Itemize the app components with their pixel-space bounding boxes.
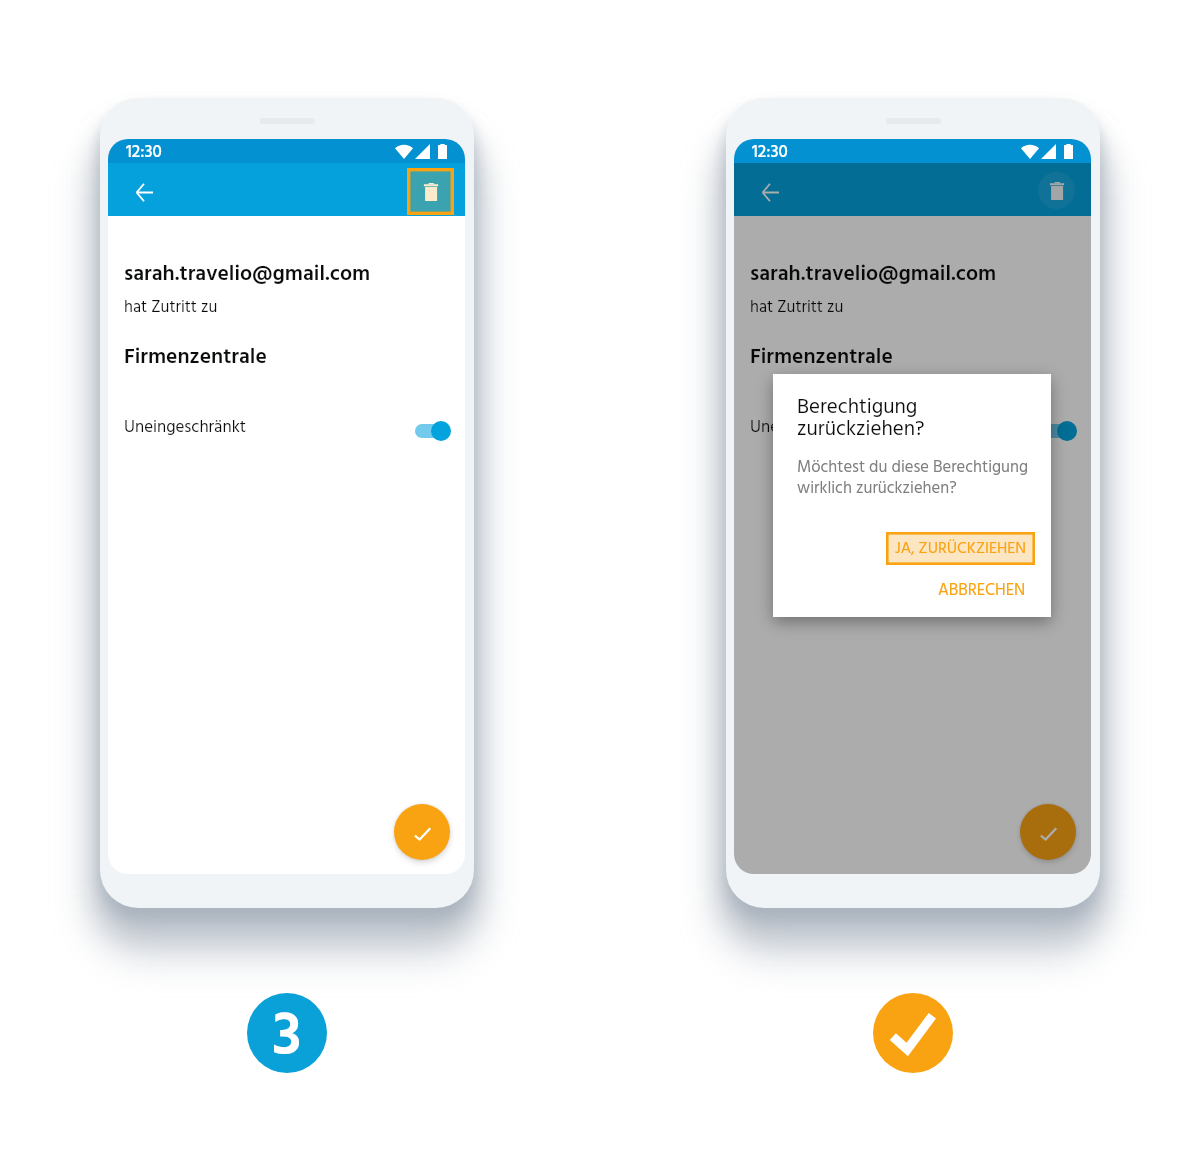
- staticText: Firmenzentrale: [124, 340, 267, 374]
- button[interactable]: ABBRECHEN: [928, 576, 1035, 604]
- staticText: ABBRECHEN: [938, 577, 1026, 604]
- staticText: Firmenzentrale: [750, 340, 893, 374]
- staticText: JA, ZURÜCKZIEHEN: [895, 536, 1027, 562]
- button[interactable]: Back: [748, 170, 792, 214]
- staticText: Uneingeschränkt: [750, 414, 873, 441]
- staticText: 3: [272, 993, 302, 1069]
- button[interactable]: Back: [122, 170, 166, 214]
- button[interactable]: Uneingeschränkt: [108, 409, 465, 445]
- staticText: 12:30: [126, 139, 162, 163]
- button[interactable]: JA, ZURÜCKZIEHEN: [886, 532, 1035, 565]
- button[interactable]: Delete: [1038, 172, 1075, 209]
- button[interactable]: Delete: [407, 168, 454, 215]
- button[interactable]: Confirm: [394, 804, 450, 860]
- staticText: sarah.travelio@gmail.com: [124, 257, 371, 291]
- staticText: sarah.travelio@gmail.com: [750, 257, 997, 291]
- staticText: hat Zutritt zu: [124, 295, 218, 321]
- staticText: hat Zutritt zu: [750, 295, 844, 321]
- button[interactable]: Uneingeschränkt: [734, 409, 1091, 445]
- staticText: Berechtigung zurückziehen?: [797, 391, 925, 447]
- staticText: 12:30: [752, 139, 788, 163]
- button[interactable]: Confirm: [1020, 804, 1076, 860]
- button[interactable]: Step 3: [247, 993, 327, 1073]
- staticText: Uneingeschränkt: [124, 414, 247, 441]
- button[interactable]: Done: [873, 993, 953, 1073]
- staticText: Möchtest du diese Berechtigung wirklich …: [797, 454, 1029, 502]
